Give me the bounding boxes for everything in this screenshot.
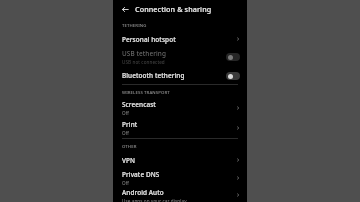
button[interactable]: Personal hotspot (113, 31, 247, 47)
staticText: OTHER (122, 143, 137, 149)
button[interactable]: Back (120, 4, 131, 15)
staticText: Off (122, 180, 130, 186)
button[interactable]: Screencast (113, 98, 247, 118)
staticText: Screencast (122, 100, 156, 109)
staticText: USB not connected (122, 59, 165, 65)
staticText: Android Auto (122, 188, 164, 197)
staticText: Print (122, 120, 138, 129)
staticText: Off (122, 110, 130, 116)
button[interactable]: Android Auto (113, 188, 247, 202)
staticText: TETHERING (122, 22, 147, 28)
button[interactable]: Bluetooth tethering (113, 67, 247, 84)
button[interactable]: Private DNS (113, 168, 247, 188)
staticText: Private DNS (122, 170, 160, 179)
staticText: Personal hotspot (122, 35, 176, 44)
staticText: Connection & sharing (135, 4, 212, 14)
button[interactable]: Toggle (226, 72, 240, 80)
staticText: Off (122, 130, 130, 136)
staticText: VPN (122, 156, 136, 165)
button[interactable]: VPN (113, 152, 247, 168)
button[interactable]: Print (113, 118, 247, 138)
button[interactable]: USB tethering (113, 47, 247, 67)
staticText: Bluetooth tethering (122, 71, 185, 80)
staticText: WIRELESS TRANSPORT (122, 89, 170, 95)
button[interactable]: Toggle (226, 53, 240, 61)
staticText: Use apps on your car display (122, 198, 187, 202)
staticText: USB tethering (122, 49, 167, 58)
